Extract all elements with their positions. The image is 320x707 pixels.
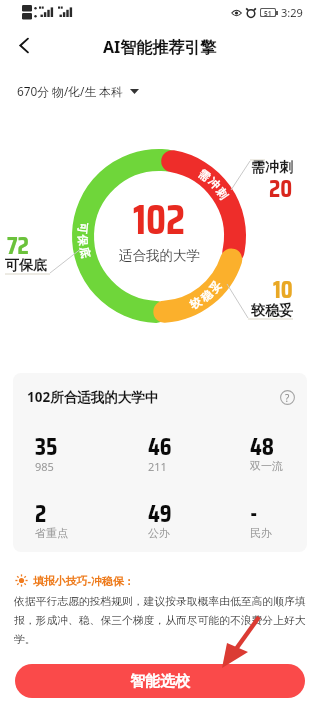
staticText: 670分 物/化/生 本科 bbox=[17, 83, 123, 99]
staticText: 3:29 bbox=[281, 5, 303, 20]
button[interactable]: 670分 物/化/生 本科 bbox=[13, 79, 143, 103]
button[interactable]: Back bbox=[2, 28, 46, 62]
staticText: 冲 bbox=[205, 174, 223, 192]
staticText: 48 bbox=[250, 427, 274, 466]
staticText: 需 bbox=[196, 166, 213, 184]
staticText: 双一流 bbox=[250, 459, 283, 473]
staticText: 102所合适我的大学中 bbox=[27, 388, 159, 406]
staticText: 可 bbox=[75, 222, 90, 235]
staticText: 102 bbox=[133, 186, 185, 252]
button[interactable]: Help bbox=[280, 390, 295, 405]
staticText: 较稳妥 bbox=[251, 302, 293, 320]
staticText: 985 bbox=[35, 459, 54, 474]
staticText: 填报小技巧-冲稳保： bbox=[33, 573, 135, 588]
staticText: 51 bbox=[264, 9, 272, 16]
staticText: 可保底 bbox=[5, 257, 47, 275]
staticText: 省重点 bbox=[35, 526, 68, 540]
staticText: 2 bbox=[35, 494, 47, 533]
staticText: 妥 bbox=[206, 278, 224, 295]
staticText: 需冲刺 bbox=[251, 159, 293, 177]
staticText: ? bbox=[285, 391, 290, 405]
staticText: 依据平行志愿的投档规则，建议按录取概率由低至高的顺序填报，形成冲、稳、保三个梯度… bbox=[14, 595, 307, 646]
staticText: 较 bbox=[187, 294, 204, 312]
staticText: 49 bbox=[148, 494, 172, 533]
staticText: 稳 bbox=[198, 287, 215, 305]
staticText: 保 bbox=[76, 235, 90, 246]
staticText: 10 bbox=[273, 270, 293, 309]
staticText: - bbox=[250, 494, 258, 533]
staticText: 20 bbox=[269, 169, 293, 208]
staticText: AI智能推荐引擎 bbox=[103, 36, 217, 58]
staticText: 智能选校 bbox=[130, 672, 190, 691]
staticText: 民办 bbox=[250, 526, 272, 540]
staticText: 72 bbox=[7, 226, 29, 265]
staticText: 35 bbox=[35, 427, 58, 466]
staticText: 公办 bbox=[148, 526, 170, 540]
staticText: 刺 bbox=[213, 185, 231, 202]
staticText: 46 bbox=[148, 427, 172, 466]
staticText: 适合我的大学 bbox=[119, 247, 200, 264]
staticText: 211 bbox=[148, 459, 167, 474]
staticText: 底 bbox=[77, 246, 93, 259]
button[interactable]: 智能选校 bbox=[15, 664, 305, 698]
